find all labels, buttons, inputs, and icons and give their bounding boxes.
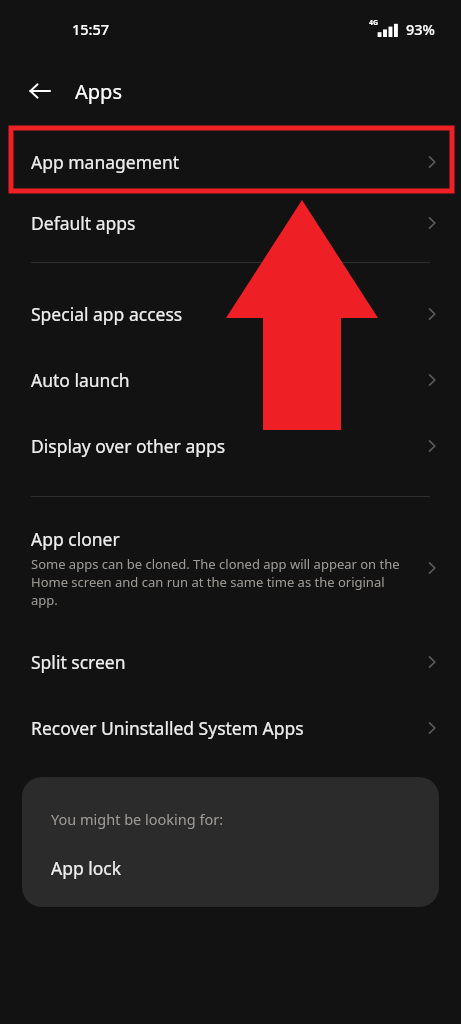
button[interactable]: App cloner — [0, 513, 461, 623]
staticText: Auto launch — [31, 368, 130, 392]
staticText: You might be looking for: — [51, 809, 224, 829]
staticText: Recover Uninstalled System Apps — [31, 716, 304, 740]
button[interactable]: App management — [0, 131, 461, 192]
staticText: Split screen — [31, 650, 126, 674]
staticText: 93% — [406, 19, 435, 39]
staticText: App management — [31, 150, 180, 174]
button[interactable]: Recover Uninstalled System Apps — [0, 701, 461, 755]
button[interactable]: Back — [18, 69, 62, 113]
staticText: Special app access — [31, 302, 183, 326]
staticText: Display over other apps — [31, 434, 226, 458]
button[interactable]: Default apps — [0, 192, 461, 253]
staticText: Default apps — [31, 211, 136, 235]
button[interactable]: Auto launch — [0, 353, 461, 407]
button[interactable]: Display over other apps — [0, 419, 461, 473]
staticText: 15:57 — [72, 19, 110, 39]
button[interactable]: Split screen — [0, 635, 461, 689]
staticText: App cloner — [31, 527, 120, 551]
staticText: Some apps can be cloned. The cloned app … — [31, 555, 411, 609]
button[interactable]: You might be looking for: — [22, 777, 439, 907]
staticText: 4G — [369, 18, 379, 28]
button[interactable]: Special app access — [0, 287, 461, 341]
staticText: Apps — [75, 78, 122, 105]
staticText: App lock — [51, 856, 122, 880]
